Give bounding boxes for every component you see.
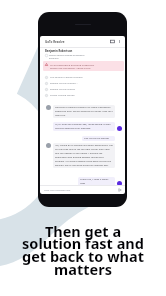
staticText: If you experience anything suspicious pl… <box>50 63 102 69</box>
staticText: This session is being recorded <box>50 76 83 79</box>
staticText: Welcome to Remote Support! My name is Be… <box>55 106 113 117</box>
staticText: Screen sharing started <box>50 94 75 97</box>
button[interactable]: If you experience anything suspicious pl… <box>45 63 122 69</box>
staticText: Then get a solution fast and get back to… <box>18 221 148 279</box>
staticText: Hi, if I open the Calendar app, I keep s… <box>55 123 113 130</box>
button[interactable]: GoTo Resolve <box>45 36 122 47</box>
staticText: Remote control starting ... <box>50 82 79 85</box>
staticText: Type your message here <box>44 189 71 192</box>
staticText: Remote control started <box>50 88 75 91</box>
staticText: Can you fix this please? <box>84 137 110 140</box>
button[interactable]: Type your message here <box>44 186 122 194</box>
staticText: GoTo Resolve <box>45 40 65 44</box>
button[interactable]: Remote control starting ... <box>45 80 125 86</box>
staticText: Support session initiated by Benjamin Ro… <box>49 54 87 60</box>
button[interactable]: This session is being recorded <box>45 74 125 80</box>
button[interactable]: Screen share <box>110 39 115 44</box>
button[interactable]: Send <box>118 188 122 192</box>
button[interactable]: Screen sharing started <box>45 92 125 98</box>
button[interactable]: Remote control started <box>45 86 125 92</box>
staticText: Yes, should go to Settings and select ap… <box>55 144 113 167</box>
button[interactable]: More options <box>117 39 122 44</box>
staticText: Benjamin Robertson <box>45 49 73 53</box>
staticText: Thank you, I think it works now! <box>80 178 113 185</box>
